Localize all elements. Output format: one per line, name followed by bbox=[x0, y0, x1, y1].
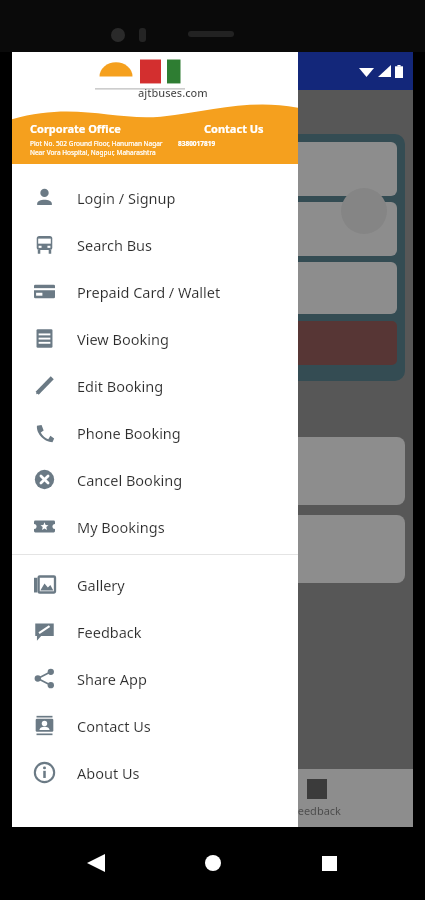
staticText: Popular Routes bbox=[24, 397, 192, 427]
staticText: Plot No. 502 Ground Floor, Hanuman Nagar bbox=[30, 139, 163, 148]
button[interactable]: Cancel Booking bbox=[12, 456, 298, 503]
staticText: Nagpur — Aurangabad bbox=[52, 525, 224, 545]
staticText: About Us bbox=[77, 763, 140, 783]
button[interactable]: Contact Us bbox=[12, 702, 298, 749]
button[interactable]: About Us bbox=[12, 749, 298, 796]
button[interactable]: Edit Booking bbox=[12, 362, 298, 409]
staticText: Search Bus bbox=[77, 235, 152, 255]
button[interactable]: Search Bus bbox=[12, 221, 298, 268]
staticText: 8380017819 bbox=[178, 139, 216, 148]
button[interactable]: Back bbox=[76, 843, 116, 883]
button[interactable]: Feedback bbox=[12, 608, 298, 655]
staticText: Today bbox=[151, 279, 190, 298]
button[interactable]: My Bookings bbox=[12, 503, 298, 550]
staticText: ajtbuses.com bbox=[138, 85, 208, 100]
staticText: Next day bbox=[216, 279, 274, 298]
staticText: Near Vora Hospital, Nagpur, Maharashtra bbox=[30, 148, 156, 157]
staticText: Contact Us bbox=[77, 716, 151, 736]
button[interactable]: Login / Signup bbox=[12, 174, 298, 221]
staticText: Share App bbox=[77, 669, 147, 689]
staticText: Phone Booking bbox=[77, 423, 181, 443]
staticText: Select Date bbox=[32, 473, 106, 492]
button[interactable]: View Booking bbox=[12, 315, 298, 362]
staticText: Gallery bbox=[77, 575, 125, 595]
button[interactable]: Recent apps bbox=[309, 843, 349, 883]
staticText: Prepaid Card / Wallet bbox=[77, 282, 221, 302]
staticText: Select Date bbox=[32, 551, 106, 570]
staticText: Corporate Office bbox=[30, 121, 121, 136]
staticText: Cancel Booking bbox=[77, 470, 183, 490]
staticText: Edit Booking bbox=[77, 376, 164, 396]
staticText: Feedback bbox=[77, 622, 142, 642]
staticText: My Bookings bbox=[77, 517, 165, 537]
button[interactable]: Gallery bbox=[12, 561, 298, 608]
button[interactable]: Share App bbox=[12, 655, 298, 702]
staticText: Login / Signup bbox=[77, 188, 176, 208]
staticText: View Booking bbox=[77, 329, 169, 349]
staticText: Feedback bbox=[292, 803, 341, 818]
button[interactable]: Home bbox=[193, 843, 233, 883]
button[interactable]: Prepaid Card / Wallet bbox=[12, 268, 298, 315]
staticText: Contact Us bbox=[204, 121, 264, 136]
button[interactable]: Phone Booking bbox=[12, 409, 298, 456]
